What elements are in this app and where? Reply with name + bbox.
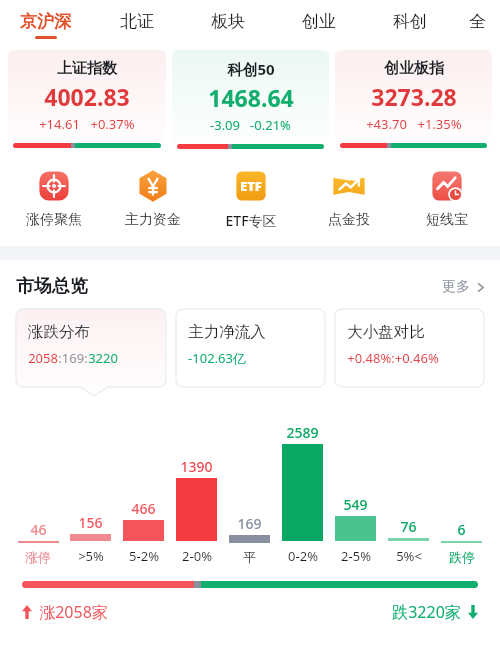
staticText: ETF专区 <box>225 211 277 230</box>
staticText: ETF <box>240 177 262 195</box>
button[interactable]: 科创50 <box>172 50 329 157</box>
button[interactable]: 主力净流入 <box>176 309 325 367</box>
staticText: >5% <box>78 547 104 565</box>
staticText: 156 <box>78 513 103 532</box>
staticText: 平 <box>243 549 256 565</box>
other: 短线宝 <box>430 169 464 203</box>
staticText: 涨2058家 <box>39 601 108 623</box>
staticText: 76 <box>400 517 417 536</box>
staticText: 46 <box>30 520 47 539</box>
staticText: +0.48%:+0.46% <box>347 349 439 367</box>
staticText: -0.21% <box>250 116 291 134</box>
button[interactable]: 短线宝 <box>398 169 496 229</box>
staticText: +1.35% <box>417 115 462 133</box>
staticText: -102.63亿 <box>188 349 246 367</box>
staticText: 跌停 <box>449 549 475 565</box>
button[interactable]: 创业 <box>273 0 364 50</box>
staticText: 3273.28 <box>371 81 457 112</box>
staticText: 上证指数 <box>57 59 117 78</box>
staticText: 市场总览 <box>16 275 88 298</box>
staticText: 创业 <box>302 11 336 32</box>
staticText: +14.61 <box>39 115 80 133</box>
staticText: 涨跌分布 <box>28 322 90 342</box>
staticText: 1468.64 <box>208 82 294 113</box>
staticText: 549 <box>343 495 368 514</box>
button[interactable]: 创业板指 <box>335 50 492 156</box>
staticText: 更多 <box>442 278 470 296</box>
button[interactable]: ETF专区 <box>202 169 300 230</box>
button[interactable]: 科创 <box>364 0 455 50</box>
other: 点金投 <box>332 169 366 203</box>
staticText: 2-0% <box>182 547 212 565</box>
other: ETF专区 <box>234 169 268 203</box>
staticText: 科创50 <box>227 59 275 79</box>
staticText: 4002.83 <box>44 81 130 112</box>
staticText: 短线宝 <box>426 211 468 229</box>
staticText: 466 <box>131 499 156 518</box>
staticText: 169 <box>237 514 262 533</box>
button[interactable]: 大小盘对比 <box>335 309 484 367</box>
staticText: 跌3220家 <box>392 601 461 623</box>
staticText: 北证 <box>120 11 154 32</box>
other: 涨停聚焦 <box>37 169 71 203</box>
staticText: :169: <box>58 349 88 367</box>
staticText: 涨停聚焦 <box>26 211 82 229</box>
staticText: 主力净流入 <box>188 322 266 342</box>
button[interactable]: 点金投 <box>300 169 398 229</box>
staticText: 主力资金 <box>125 211 181 229</box>
staticText: 2589 <box>286 423 319 442</box>
staticText: 全 <box>469 11 486 32</box>
staticText: +43.70 <box>366 115 407 133</box>
button[interactable]: 涨跌分布 <box>16 309 166 367</box>
staticText: 大小盘对比 <box>347 322 425 342</box>
button[interactable]: 北证 <box>91 0 182 50</box>
staticText: +0.37% <box>90 115 135 133</box>
staticText: 5-2% <box>129 547 159 565</box>
other: 主力资金 <box>136 169 170 203</box>
button[interactable]: 更多 <box>442 278 486 296</box>
staticText: 5%< <box>396 547 422 565</box>
staticText: 2-5% <box>341 547 371 565</box>
button[interactable]: 上证指数 <box>8 50 166 156</box>
staticText: 涨停 <box>25 549 51 565</box>
button[interactable]: 全 <box>455 0 500 50</box>
staticText: 科创 <box>393 11 427 32</box>
staticText: 0-2% <box>288 547 318 565</box>
staticText: 2058 <box>28 349 58 367</box>
button[interactable]: 主力资金 <box>103 169 202 229</box>
button[interactable]: 板块 <box>182 0 273 50</box>
staticText: 京沪深 <box>20 11 71 32</box>
staticText: -3.09 <box>210 116 240 134</box>
staticText: 板块 <box>211 11 245 32</box>
button[interactable]: 涨停聚焦 <box>4 169 103 229</box>
staticText: 3220 <box>88 349 118 367</box>
button[interactable]: 京沪深 <box>0 0 91 50</box>
staticText: 创业板指 <box>384 59 444 78</box>
staticText: 点金投 <box>328 211 370 229</box>
staticText: 6 <box>457 520 466 539</box>
staticText: 1390 <box>180 457 213 476</box>
